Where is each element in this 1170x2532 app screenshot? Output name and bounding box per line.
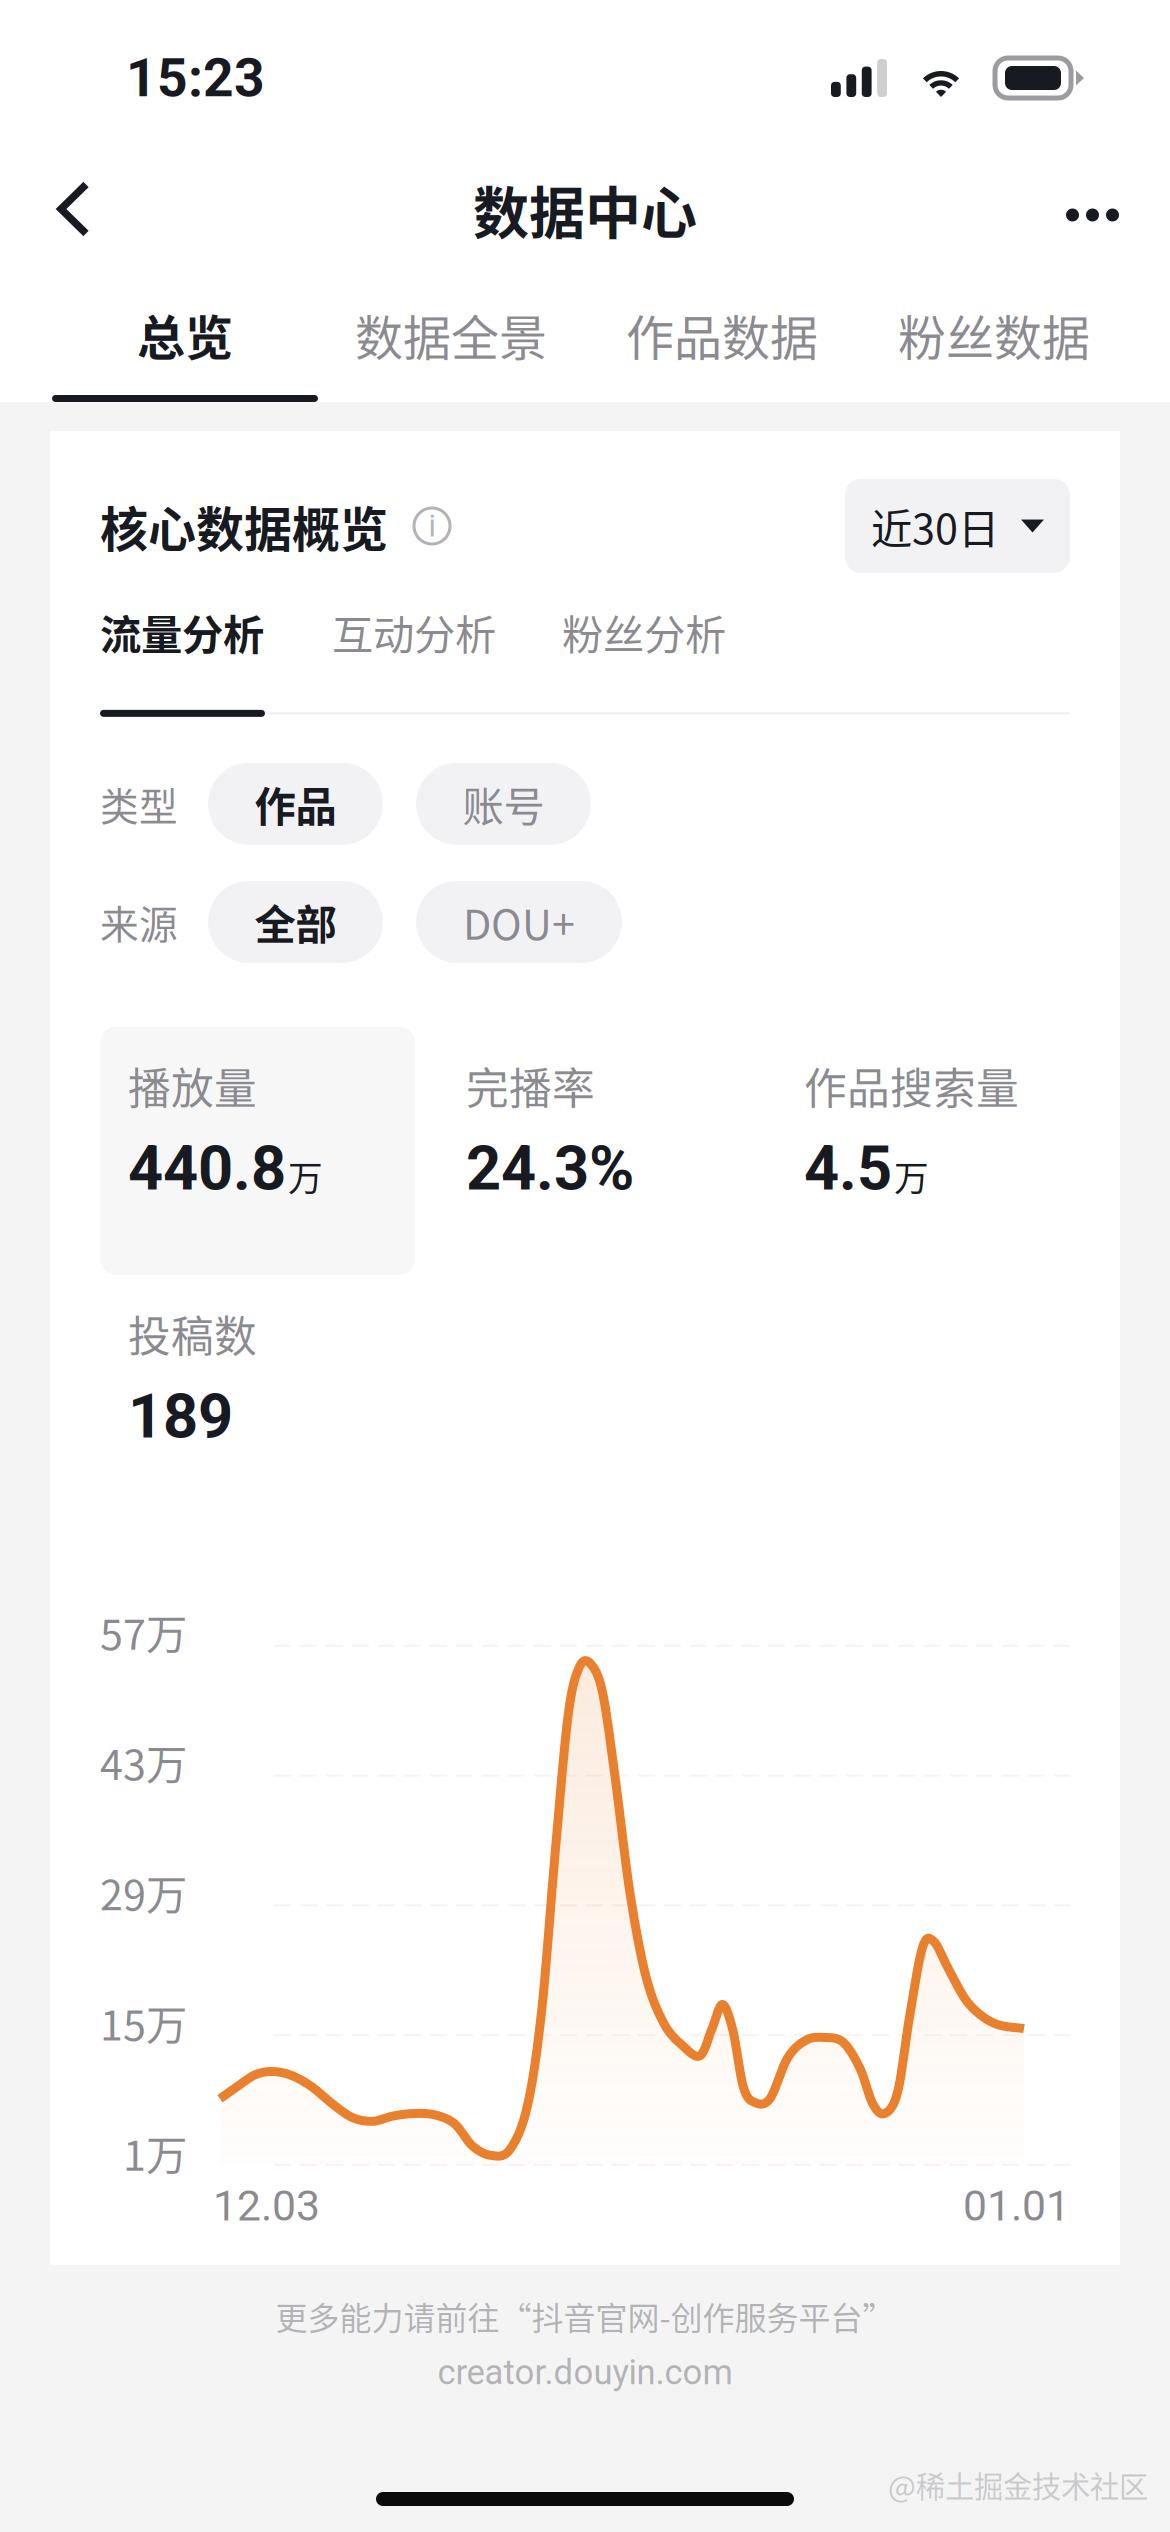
staticText: 24.3%: [466, 1133, 634, 1204]
staticText: 15万: [100, 1993, 187, 2053]
staticText: 作品: [254, 774, 336, 834]
button[interactable]: 作品数据: [586, 292, 858, 402]
button[interactable]: 互动分析: [264, 596, 496, 668]
button[interactable]: 近30日: [845, 479, 1070, 573]
staticText: 粉丝分析: [562, 602, 726, 662]
staticText: 作品搜索量: [804, 1055, 1019, 1117]
staticText: 15:23: [126, 47, 265, 109]
staticText: 核心数据概览: [100, 491, 388, 561]
button[interactable]: 全部: [208, 881, 383, 963]
staticText: 189: [128, 1381, 233, 1452]
staticText: creator.douyin.com: [437, 2352, 732, 2393]
button[interactable]: 粉丝数据: [858, 292, 1130, 402]
staticText: 总览: [137, 300, 233, 369]
staticText: 29万: [100, 1862, 187, 1922]
staticText: 流量分析: [100, 602, 264, 662]
staticText: 12.03: [213, 2181, 320, 2231]
staticText: 投稿数: [128, 1303, 257, 1365]
staticText: 全部: [254, 892, 336, 952]
staticText: 1万: [123, 2123, 187, 2183]
staticText: 4.5: [804, 1133, 892, 1204]
staticText: 播放量: [128, 1055, 257, 1117]
staticText: 57万: [100, 1602, 187, 1662]
staticText: 互动分析: [332, 602, 496, 662]
staticText: i: [428, 508, 435, 544]
staticText: 近30日: [871, 496, 999, 556]
button[interactable]: DOU+: [416, 881, 622, 963]
staticText: 作品数据: [626, 300, 818, 369]
staticText: 粉丝数据: [898, 300, 1090, 369]
staticText: 更多能力请前往“抖音官网-创作服务平台”: [275, 2293, 894, 2339]
button[interactable]: Back: [0, 146, 137, 271]
button[interactable]: 流量分析: [100, 596, 264, 668]
staticText: DOU+: [463, 892, 575, 952]
button[interactable]: 粉丝分析: [496, 596, 726, 668]
staticText: 类型: [100, 776, 178, 832]
button[interactable]: More: [1011, 146, 1170, 271]
button[interactable]: 数据全景: [318, 292, 586, 402]
button[interactable]: 总览: [0, 292, 318, 402]
button[interactable]: 作品: [208, 763, 383, 845]
staticText: 完播率: [466, 1055, 595, 1117]
staticText: 万: [288, 1151, 323, 1201]
staticText: 数据中心: [473, 168, 697, 250]
staticText: 账号: [462, 774, 544, 834]
staticText: 440.8: [128, 1133, 286, 1204]
staticText: 数据全景: [355, 300, 547, 369]
staticText: @稀土掘金技术社区: [888, 2463, 1148, 2506]
staticText: 01.01: [963, 2181, 1070, 2231]
staticText: 来源: [100, 894, 178, 950]
button[interactable]: 账号: [416, 763, 591, 845]
staticText: 万: [894, 1151, 929, 1201]
staticText: 43万: [100, 1732, 187, 1792]
